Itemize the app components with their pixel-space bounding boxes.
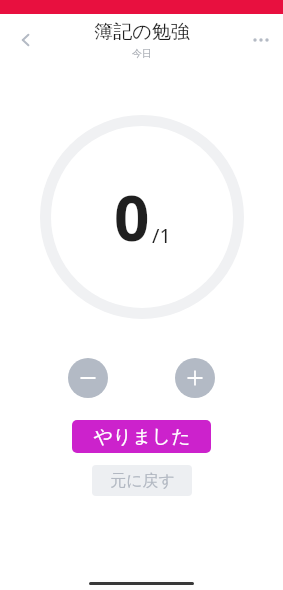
button[interactable]: Decrease xyxy=(68,358,108,398)
staticText: 元に戻す xyxy=(110,471,175,491)
button[interactable]: Back xyxy=(6,20,46,60)
staticText: 今日 xyxy=(132,47,152,60)
staticText: 0 xyxy=(114,175,150,259)
button[interactable]: More options xyxy=(243,22,279,58)
staticText: やりました xyxy=(93,425,191,449)
button[interactable]: やりました xyxy=(72,420,211,453)
staticText: 簿記の勉強 xyxy=(94,20,190,44)
staticText: /1 xyxy=(152,222,171,249)
button[interactable]: 元に戻す xyxy=(92,465,192,496)
button[interactable]: Increase xyxy=(175,358,215,398)
